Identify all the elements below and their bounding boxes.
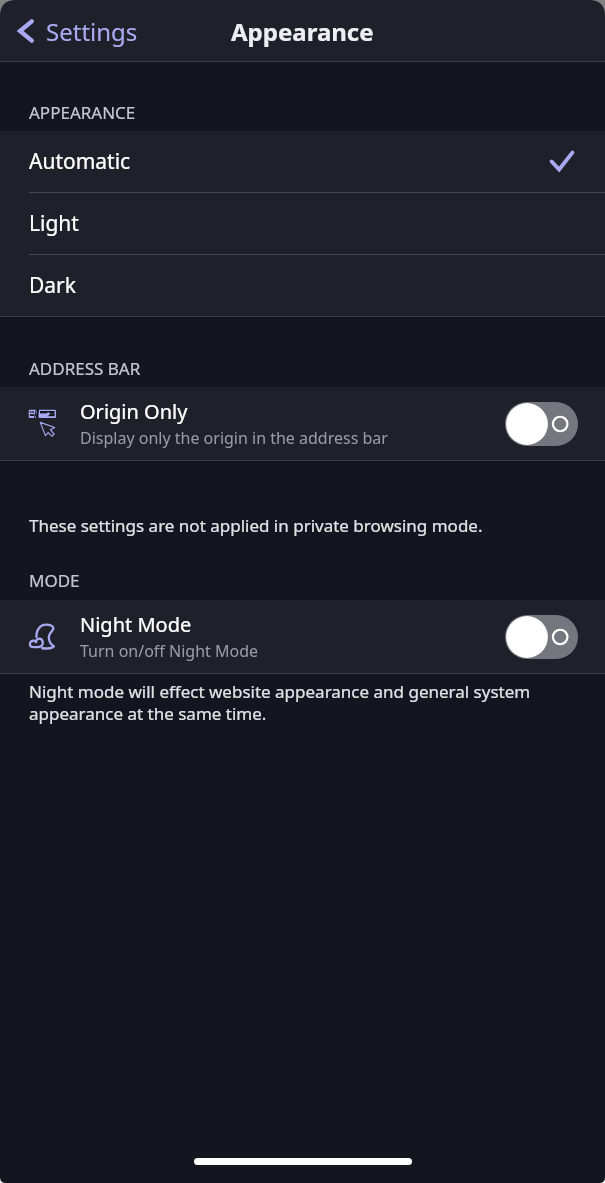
staticText: Night Mode (80, 611, 192, 638)
staticText: Automatic (29, 147, 131, 176)
button[interactable]: Automatic (0, 131, 605, 192)
staticText: Night mode will effect website appearanc… (29, 680, 581, 725)
staticText: ADDRESS BAR (29, 357, 141, 380)
staticText: Origin Only (80, 398, 188, 425)
button[interactable]: Night mode toggle (505, 615, 578, 659)
button[interactable]: Night Mode (0, 600, 605, 673)
button[interactable]: Dark (0, 255, 605, 316)
other: Selected (549, 149, 575, 175)
staticText: Turn on/off Night Mode (80, 640, 259, 662)
staticText: MODE (29, 569, 80, 592)
staticText: These settings are not applied in privat… (29, 514, 581, 537)
button[interactable]: Light (0, 193, 605, 254)
staticText: Dark (29, 271, 76, 300)
staticText: APPEARANCE (29, 101, 136, 124)
staticText: Settings (46, 15, 138, 48)
staticText: Display only the origin in the address b… (80, 427, 388, 449)
button[interactable]: Origin Only (0, 387, 605, 460)
button[interactable]: Origin only toggle (505, 402, 578, 446)
button[interactable]: Settings (0, 0, 150, 62)
staticText: Light (29, 209, 79, 238)
staticText: Appearance (231, 15, 374, 48)
